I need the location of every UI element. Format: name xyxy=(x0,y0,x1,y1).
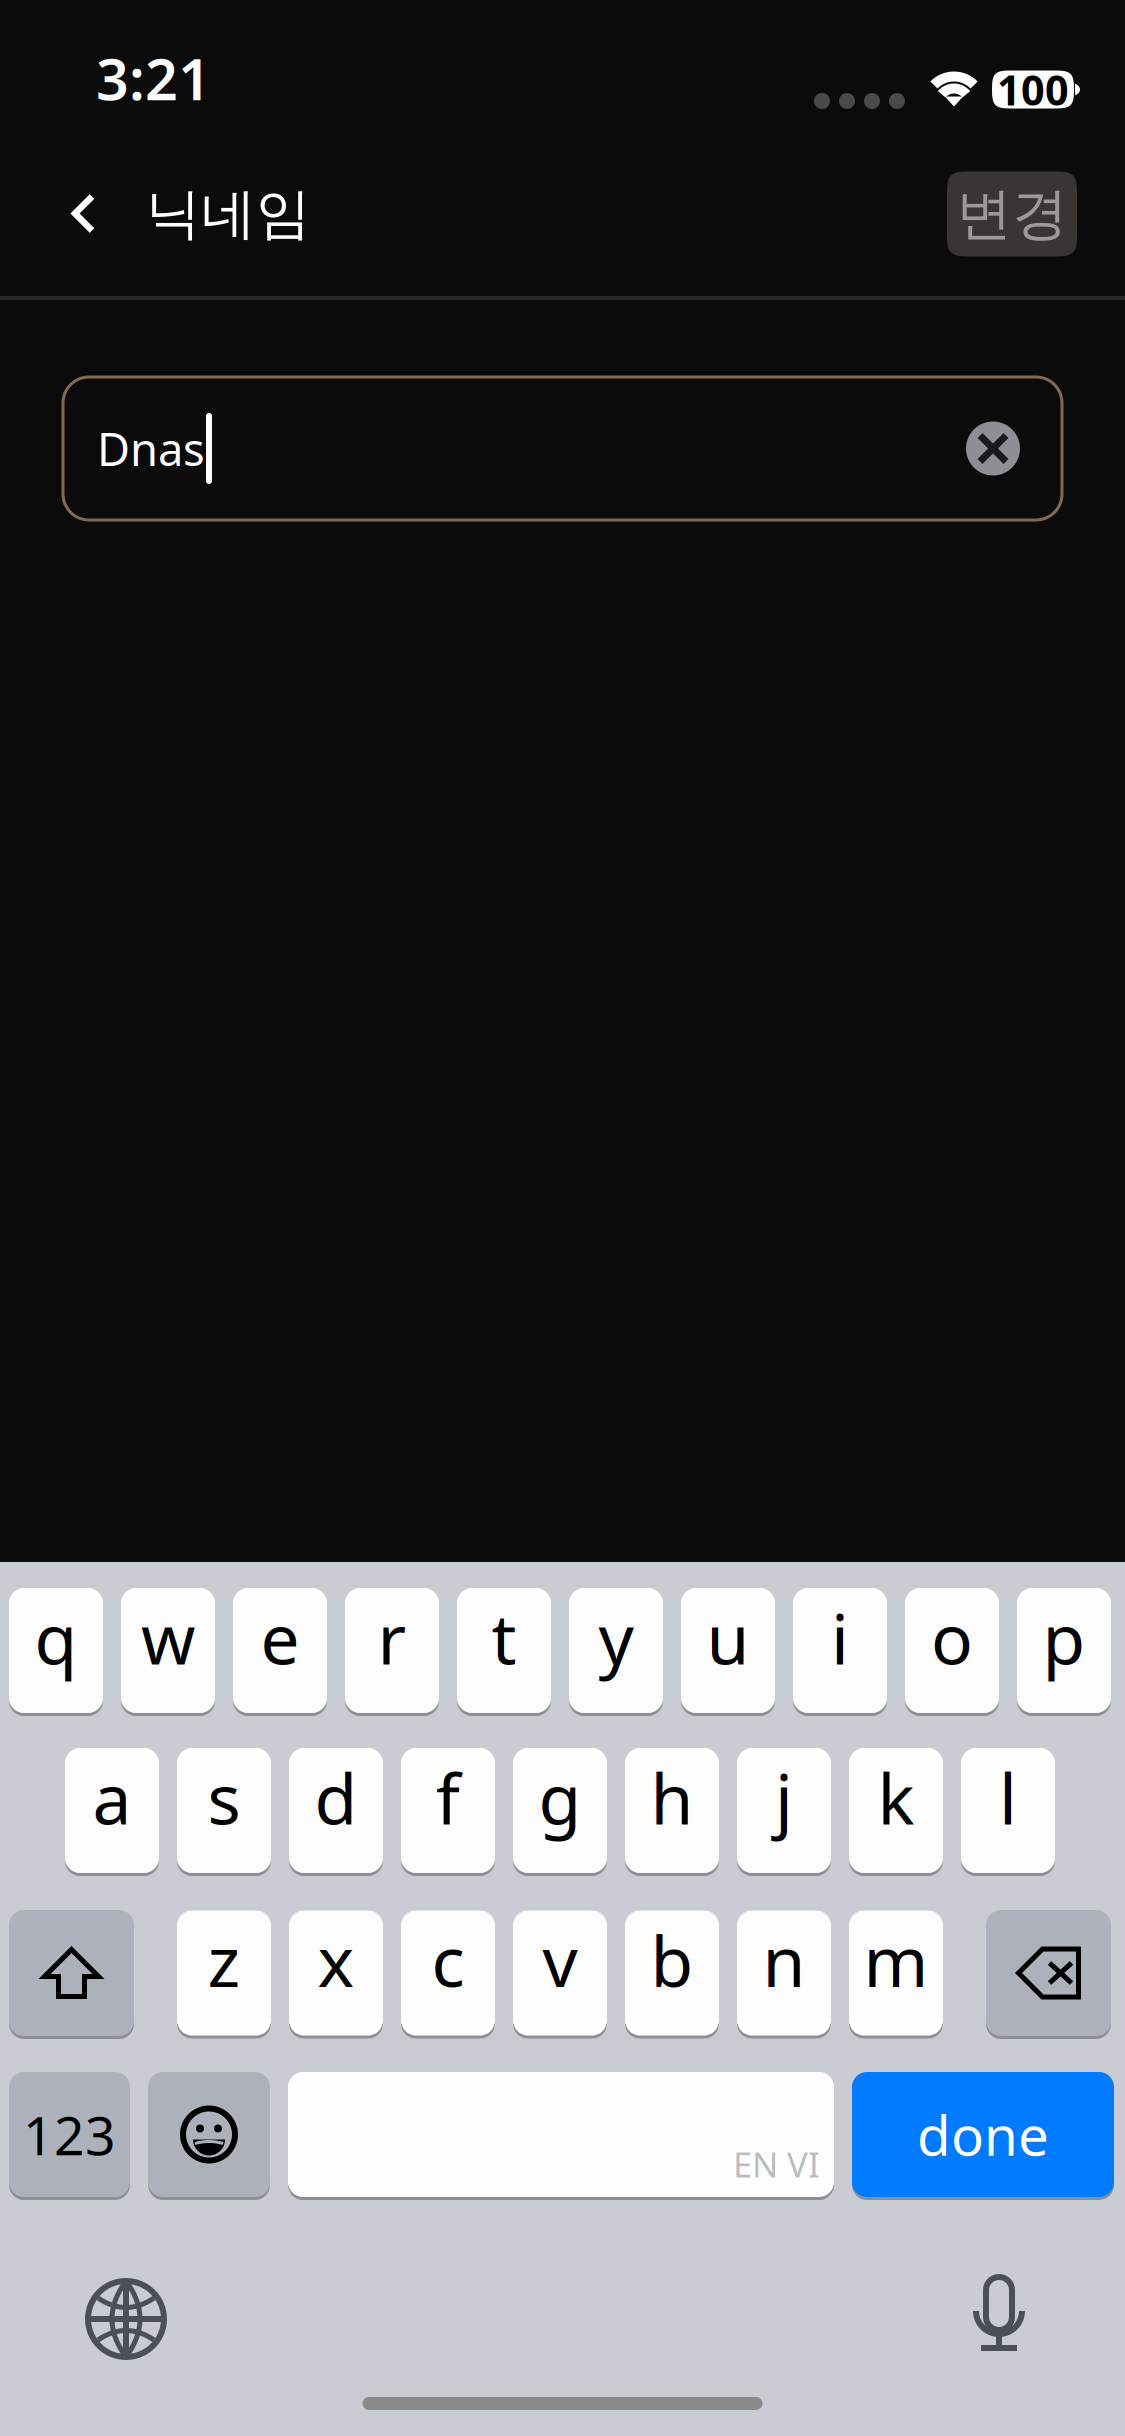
button[interactable]: Back xyxy=(0,193,146,234)
button[interactable]: d xyxy=(289,1748,383,1876)
staticText: y xyxy=(598,1591,633,1684)
staticText: k xyxy=(877,1751,914,1844)
button[interactable]: i xyxy=(793,1588,887,1716)
button[interactable]: a xyxy=(65,1748,159,1876)
staticText: q xyxy=(34,1591,77,1684)
staticText: h xyxy=(650,1751,693,1844)
button[interactable]: Dictation xyxy=(958,2278,1040,2360)
staticText: l xyxy=(999,1751,1017,1844)
button[interactable]: h xyxy=(625,1748,719,1876)
staticText: s xyxy=(207,1751,240,1844)
staticText: b xyxy=(650,1914,693,2006)
staticText: Dnas xyxy=(97,418,205,479)
staticText: f xyxy=(436,1751,460,1844)
button[interactable]: Emoji xyxy=(148,2072,270,2200)
staticText: u xyxy=(706,1591,749,1684)
button[interactable]: v xyxy=(513,1910,607,2038)
button[interactable]: x xyxy=(289,1910,383,2038)
staticText: r xyxy=(377,1591,406,1684)
button[interactable]: j xyxy=(737,1748,831,1876)
staticText: g xyxy=(538,1751,581,1844)
button[interactable]: done xyxy=(852,2072,1114,2200)
staticText: 123 xyxy=(23,2099,116,2170)
staticText: n xyxy=(762,1914,805,2006)
staticText: v xyxy=(542,1914,577,2006)
staticText: c xyxy=(431,1914,464,2006)
button[interactable]: Space xyxy=(288,2072,834,2200)
button[interactable]: o xyxy=(905,1588,999,1716)
staticText: done xyxy=(917,2098,1049,2171)
button[interactable]: q xyxy=(9,1588,103,1716)
button[interactable]: k xyxy=(849,1748,943,1876)
button[interactable]: f xyxy=(401,1748,495,1876)
button[interactable]: b xyxy=(625,1910,719,2038)
staticText: t xyxy=(491,1591,516,1684)
staticText: 변경 xyxy=(956,180,1068,248)
button[interactable]: g xyxy=(513,1748,607,1876)
button[interactable]: r xyxy=(345,1588,439,1716)
staticText: m xyxy=(863,1914,928,2006)
button[interactable]: 변경 xyxy=(947,171,1077,256)
staticText: 100 xyxy=(997,62,1069,117)
staticText: z xyxy=(207,1914,240,2006)
button[interactable]: Clear text xyxy=(966,421,1020,475)
staticText: i xyxy=(831,1591,849,1684)
staticText: 닉네임 xyxy=(146,180,311,247)
button[interactable]: t xyxy=(457,1588,551,1716)
staticText: p xyxy=(1042,1591,1085,1684)
button[interactable]: p xyxy=(1017,1588,1111,1716)
staticText: x xyxy=(317,1914,354,2006)
button[interactable]: n xyxy=(737,1910,831,2038)
button[interactable]: z xyxy=(177,1910,271,2038)
button[interactable]: c xyxy=(401,1910,495,2038)
staticText: 3:21 xyxy=(96,40,211,116)
button[interactable]: Next keyboard xyxy=(85,2278,167,2360)
button[interactable]: m xyxy=(849,1910,943,2038)
staticText: EN VI xyxy=(733,2141,820,2187)
button[interactable]: u xyxy=(681,1588,775,1716)
button[interactable]: 123 xyxy=(9,2072,130,2200)
staticText: w xyxy=(141,1591,195,1684)
button[interactable]: y xyxy=(569,1588,663,1716)
staticText: d xyxy=(314,1751,357,1844)
staticText: o xyxy=(931,1591,973,1684)
button[interactable]: w xyxy=(121,1588,215,1716)
button[interactable]: e xyxy=(233,1588,327,1716)
staticText: j xyxy=(775,1751,793,1844)
button[interactable]: Shift xyxy=(9,1910,134,2039)
staticText: a xyxy=(92,1751,131,1844)
staticText: e xyxy=(260,1591,299,1684)
button[interactable]: Delete xyxy=(986,1910,1111,2039)
button[interactable]: s xyxy=(177,1748,271,1876)
button[interactable]: l xyxy=(961,1748,1055,1876)
